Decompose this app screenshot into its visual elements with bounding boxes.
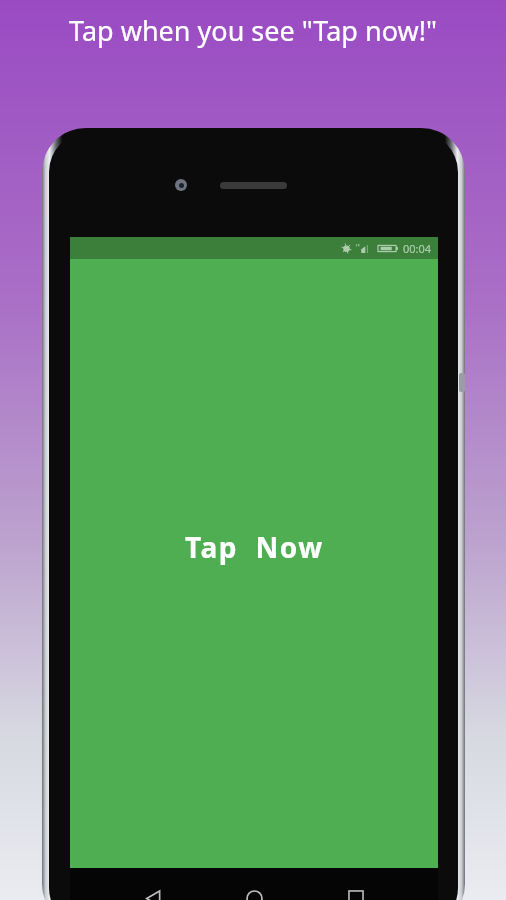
button[interactable]: Recent apps (337, 879, 375, 900)
staticText: Tap Now (185, 528, 324, 566)
button[interactable]: Tap Now (70, 237, 438, 868)
button[interactable]: Home (235, 879, 273, 900)
staticText: Tap when you see "Tap now!" (0, 12, 506, 49)
button[interactable]: Back (134, 879, 172, 900)
staticText: 00:04 (403, 241, 432, 256)
